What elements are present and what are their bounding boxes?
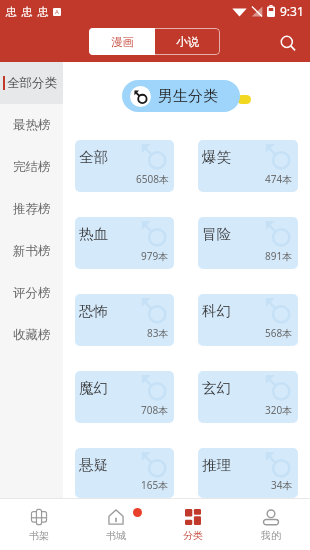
button[interactable]: 魔幻: [75, 371, 174, 423]
staticText: 推理: [202, 456, 231, 474]
button[interactable]: 完结榜: [0, 146, 63, 188]
staticText: 忠 忠 忠: [6, 4, 50, 19]
staticText: 165本: [141, 478, 169, 492]
button[interactable]: 小说: [155, 28, 220, 55]
staticText: 漫画: [111, 35, 134, 49]
button[interactable]: 书城: [77, 498, 154, 550]
staticText: 最热榜: [13, 117, 51, 133]
staticText: 小说: [176, 35, 199, 49]
button[interactable]: 全部分类: [0, 62, 63, 104]
staticText: 320本: [265, 403, 293, 417]
button[interactable]: 爆笑: [198, 140, 298, 192]
staticText: 男生分类: [158, 87, 218, 106]
button[interactable]: 最热榜: [0, 104, 63, 146]
staticText: 完结榜: [13, 159, 51, 175]
staticText: 爆笑: [202, 148, 231, 166]
button[interactable]: 收藏榜: [0, 314, 63, 356]
staticText: 891本: [265, 249, 293, 263]
button[interactable]: 推荐榜: [0, 188, 63, 230]
staticText: 全部分类: [7, 75, 57, 91]
staticText: 新书榜: [13, 243, 51, 259]
staticText: 708本: [141, 403, 169, 417]
staticText: 474本: [265, 172, 293, 186]
staticText: 魔幻: [79, 379, 108, 397]
staticText: 科幻: [202, 302, 231, 320]
staticText: 悬疑: [79, 456, 108, 474]
button[interactable]: 我的: [232, 498, 310, 550]
button[interactable]: 男生分类: [122, 80, 240, 112]
staticText: 推荐榜: [13, 201, 51, 217]
button[interactable]: 分类: [154, 498, 232, 550]
staticText: 9:31: [280, 3, 304, 19]
staticText: 分类: [183, 529, 203, 542]
staticText: 34本: [271, 478, 293, 492]
staticText: 恐怖: [79, 302, 108, 320]
staticText: 568本: [265, 326, 293, 340]
staticText: 83本: [147, 326, 169, 340]
button[interactable]: 全部: [75, 140, 174, 192]
staticText: 冒险: [202, 225, 231, 243]
button[interactable]: Search: [274, 29, 302, 57]
staticText: 我的: [261, 529, 281, 542]
staticText: 评分榜: [13, 285, 51, 301]
button[interactable]: 玄幻: [198, 371, 298, 423]
button[interactable]: 冒险: [198, 217, 298, 269]
button[interactable]: 新书榜: [0, 230, 63, 272]
button[interactable]: 恐怖: [75, 294, 174, 346]
staticText: 收藏榜: [13, 327, 51, 343]
button[interactable]: 悬疑: [75, 448, 174, 498]
staticText: 6508本: [136, 172, 169, 186]
button[interactable]: 书架: [0, 498, 77, 550]
button[interactable]: 推理: [198, 448, 298, 498]
staticText: 书架: [29, 529, 49, 542]
button[interactable]: 评分榜: [0, 272, 63, 314]
button[interactable]: 漫画: [89, 28, 155, 55]
staticText: A: [55, 8, 59, 16]
staticText: 979本: [141, 249, 169, 263]
staticText: 热血: [79, 225, 108, 243]
staticText: 全部: [79, 148, 108, 166]
button[interactable]: 热血: [75, 217, 174, 269]
button[interactable]: 科幻: [198, 294, 298, 346]
staticText: 书城: [106, 529, 126, 542]
staticText: 玄幻: [202, 379, 231, 397]
